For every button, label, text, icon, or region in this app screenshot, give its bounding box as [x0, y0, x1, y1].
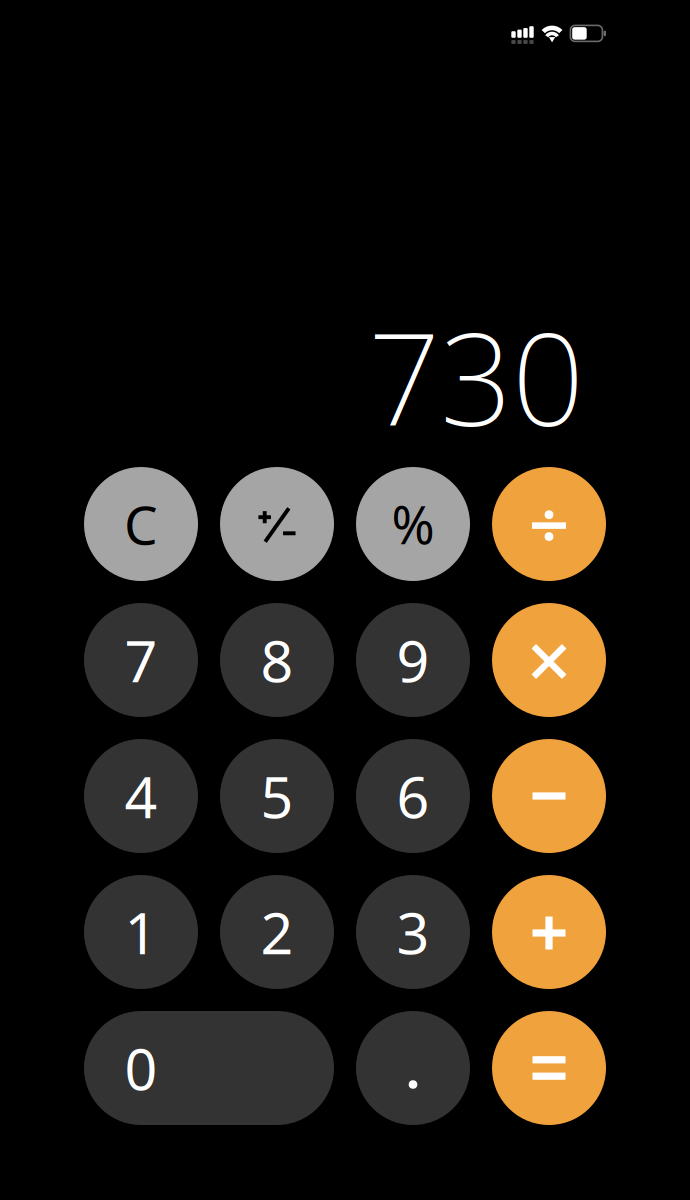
staticText: 1 — [124, 894, 157, 970]
button[interactable]: 9 — [356, 603, 470, 717]
button[interactable]: Decimal point — [356, 1011, 470, 1125]
staticText: 6 — [396, 758, 429, 834]
button[interactable]: 6 — [356, 739, 470, 853]
staticText: 0 — [124, 1030, 157, 1106]
button[interactable]: 8 — [220, 603, 334, 717]
staticText: 8 — [260, 622, 293, 698]
staticText: 7 — [124, 622, 157, 698]
button[interactable]: 0 — [84, 1011, 334, 1125]
button[interactable]: % — [356, 467, 470, 581]
button[interactable]: 2 — [220, 875, 334, 989]
button[interactable]: C — [84, 467, 198, 581]
staticText: 3 — [396, 894, 429, 970]
button[interactable]: Minus — [492, 739, 606, 853]
staticText: 2 — [260, 894, 293, 970]
staticText: 5 — [260, 758, 293, 834]
button[interactable]: Plus — [492, 875, 606, 989]
staticText: 9 — [396, 622, 429, 698]
staticText: 730 — [368, 293, 584, 461]
button[interactable]: Plus minus — [220, 467, 334, 581]
button[interactable]: 4 — [84, 739, 198, 853]
button[interactable]: Divide — [492, 467, 606, 581]
button[interactable]: 7 — [84, 603, 198, 717]
button[interactable]: Multiply — [492, 603, 606, 717]
staticText: 4 — [124, 758, 157, 834]
staticText: C — [124, 489, 158, 559]
button[interactable]: 3 — [356, 875, 470, 989]
button[interactable]: Equals — [492, 1011, 606, 1125]
staticText: % — [391, 489, 434, 559]
button[interactable]: 5 — [220, 739, 334, 853]
button[interactable]: 1 — [84, 875, 198, 989]
